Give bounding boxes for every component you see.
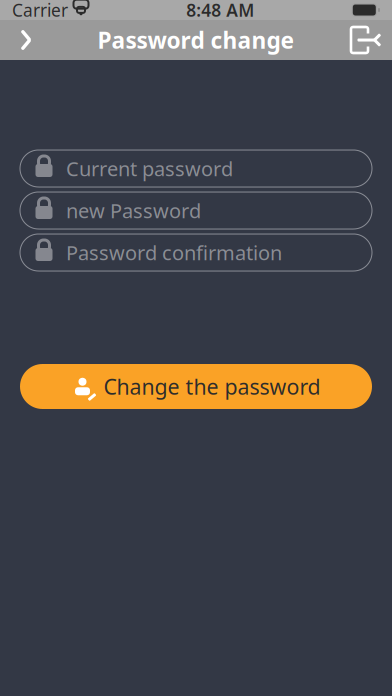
button[interactable]: Current password xyxy=(20,150,372,187)
staticText: Password confirmation xyxy=(66,239,282,266)
staticText: new Password xyxy=(66,197,201,224)
staticText: 8:48 AM xyxy=(186,0,254,21)
staticText: Current password xyxy=(66,155,233,182)
button[interactable]: new Password xyxy=(20,192,372,229)
button[interactable]: Change the password xyxy=(20,364,372,409)
button[interactable]: Back xyxy=(0,20,52,60)
staticText: Password change xyxy=(97,25,294,55)
button[interactable]: Log out xyxy=(340,20,392,60)
staticText: Carrier xyxy=(12,0,68,21)
button[interactable]: Password confirmation xyxy=(20,234,372,271)
staticText: Change the password xyxy=(103,372,320,401)
